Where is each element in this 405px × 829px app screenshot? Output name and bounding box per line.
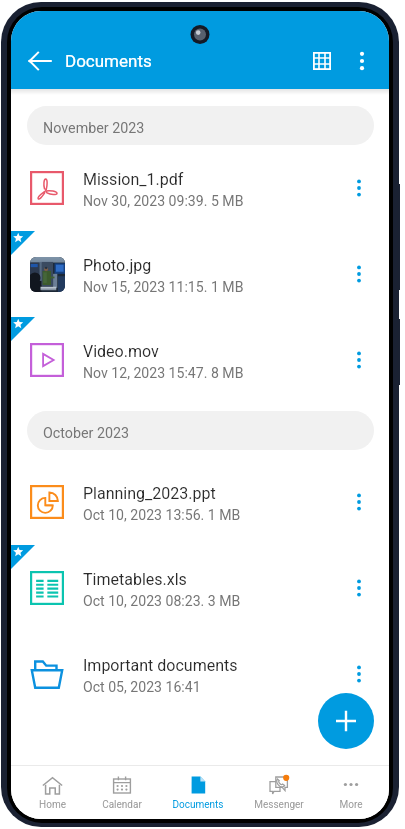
button[interactable]: Documents	[150, 766, 245, 819]
button[interactable]: Calendar	[93, 766, 150, 819]
staticText: Video.mov	[83, 342, 159, 361]
button[interactable]: Video.mov	[11, 317, 389, 403]
staticText: Messenger	[254, 799, 304, 811]
button[interactable]: Item options	[342, 485, 376, 519]
button[interactable]: Mission_1.pdf	[11, 145, 389, 231]
staticText: Nov 12, 2023 15:47. 8 MB	[83, 365, 244, 382]
button[interactable]: Back	[20, 41, 60, 81]
button[interactable]: Item options	[342, 343, 376, 377]
staticText: Nov 15, 2023 11:15. 1 MB	[83, 279, 244, 296]
button[interactable]: More options	[341, 40, 383, 82]
button[interactable]: Item options	[342, 171, 376, 205]
staticText: Oct 10, 2023 13:56. 1 MB	[83, 507, 241, 524]
staticText: Nov 30, 2023 09:39. 5 MB	[83, 193, 244, 210]
button[interactable]: Add	[318, 693, 374, 749]
staticText: More	[339, 799, 363, 811]
button[interactable]: More	[312, 766, 389, 819]
staticText: Photo.jpg	[83, 256, 152, 275]
button[interactable]: Planning_2023.ppt	[11, 459, 389, 545]
staticText: Important documents	[83, 656, 238, 675]
staticText: Planning_2023.ppt	[83, 484, 216, 503]
staticText: Oct 05, 2023 16:41	[83, 679, 201, 696]
button[interactable]: Item options	[342, 257, 376, 291]
staticText: Documents	[172, 799, 224, 811]
staticText: November 2023	[43, 120, 145, 137]
staticText: Calendar	[102, 799, 142, 811]
button[interactable]: Home	[11, 766, 93, 819]
staticText: Home	[39, 799, 66, 811]
staticText: Documents	[65, 51, 152, 71]
staticText: Mission_1.pdf	[83, 170, 184, 189]
button[interactable]: Item options	[342, 571, 376, 605]
staticText: Oct 10, 2023 08:23. 3 MB	[83, 593, 241, 610]
button[interactable]: Timetables.xls	[11, 545, 389, 631]
staticText: Timetables.xls	[83, 570, 187, 589]
button[interactable]: Messenger	[245, 766, 312, 819]
button[interactable]: Photo.jpg	[11, 231, 389, 317]
button[interactable]: Grid view	[301, 40, 343, 82]
staticText: October 2023	[43, 425, 130, 442]
button[interactable]: Important documents	[11, 631, 389, 717]
button[interactable]: Item options	[342, 657, 376, 691]
